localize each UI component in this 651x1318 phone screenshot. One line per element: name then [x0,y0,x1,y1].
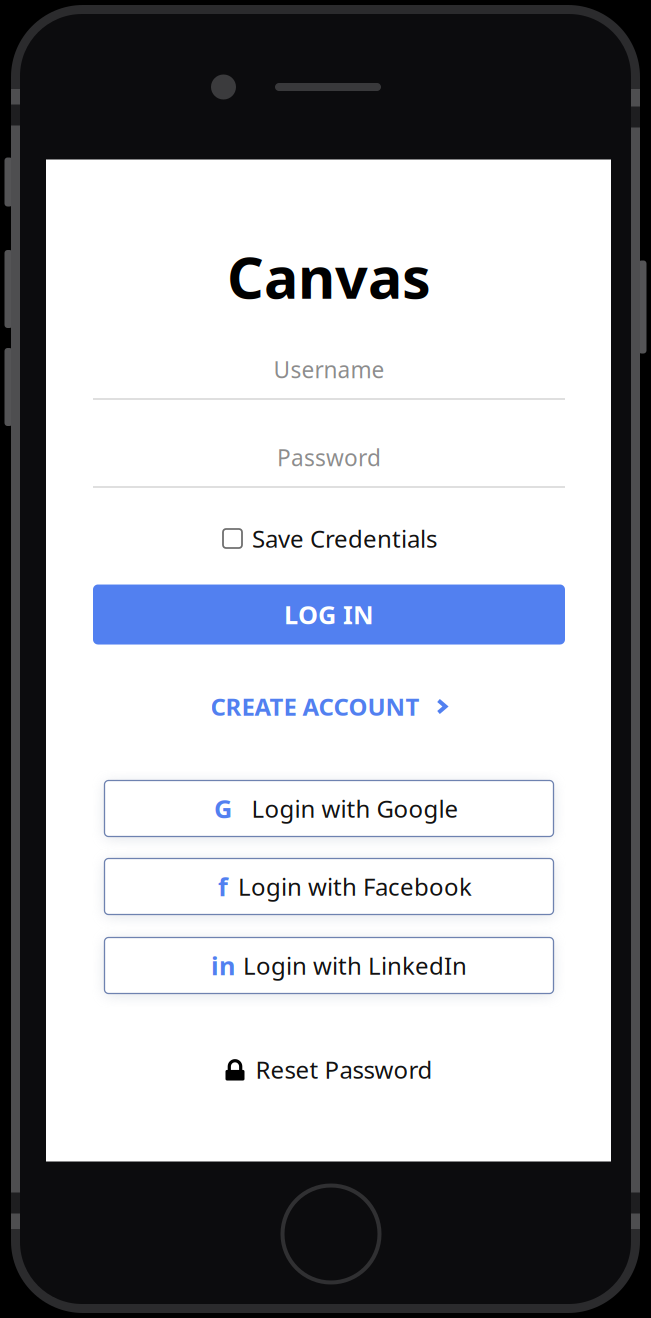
staticText: Login with Facebook [238,871,472,902]
staticText: Canvas [227,238,431,314]
button[interactable]: in [104,937,553,993]
button[interactable]: G [104,780,553,836]
staticText: LOG IN [284,598,374,631]
button[interactable]: Reset Password [225,1052,432,1086]
staticText: Reset Password [255,1054,432,1085]
staticText: Username [273,354,384,384]
staticText: Login with Google [251,793,458,824]
button[interactable]: f [104,858,553,914]
staticText: Save Credentials [252,523,437,554]
button[interactable]: CREATE ACCOUNT [210,689,447,723]
staticText: CREATE ACCOUNT [210,691,419,722]
button[interactable]: LOG IN [93,584,565,644]
button[interactable]: Password [93,435,565,487]
staticText: in [211,949,235,982]
staticText: Login with LinkedIn [243,950,467,981]
staticText: G [214,792,232,825]
button[interactable]: Username [93,347,565,399]
staticText: f [218,870,228,903]
button[interactable]: Save Credentials [223,521,437,555]
staticText: Password [277,442,381,472]
